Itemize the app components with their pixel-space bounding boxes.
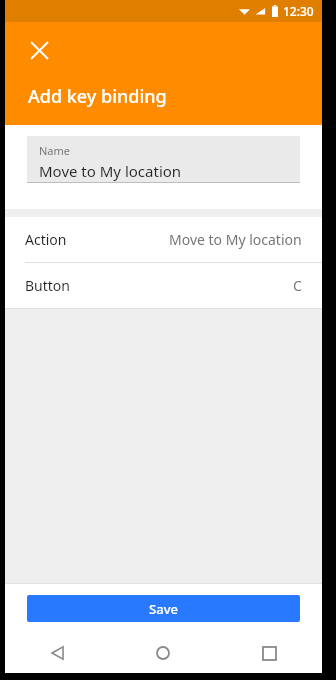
- staticText: C: [293, 276, 302, 295]
- staticText: Move to My location: [39, 161, 182, 181]
- staticText: Add key binding: [28, 84, 167, 109]
- staticText: Button: [25, 276, 70, 295]
- button[interactable]: Button: [5, 263, 322, 308]
- button[interactable]: Home: [110, 633, 216, 673]
- button[interactable]: Recent apps: [216, 633, 322, 673]
- button[interactable]: Name: [27, 136, 300, 183]
- button[interactable]: Close: [19, 30, 59, 70]
- button[interactable]: Save: [27, 595, 300, 622]
- staticText: Move to My location: [169, 230, 302, 249]
- staticText: Action: [25, 230, 67, 249]
- button[interactable]: Action: [5, 217, 322, 262]
- staticText: 12:30: [283, 3, 314, 19]
- button[interactable]: Back: [5, 633, 110, 673]
- staticText: Name: [39, 143, 71, 158]
- staticText: Save: [149, 600, 178, 618]
